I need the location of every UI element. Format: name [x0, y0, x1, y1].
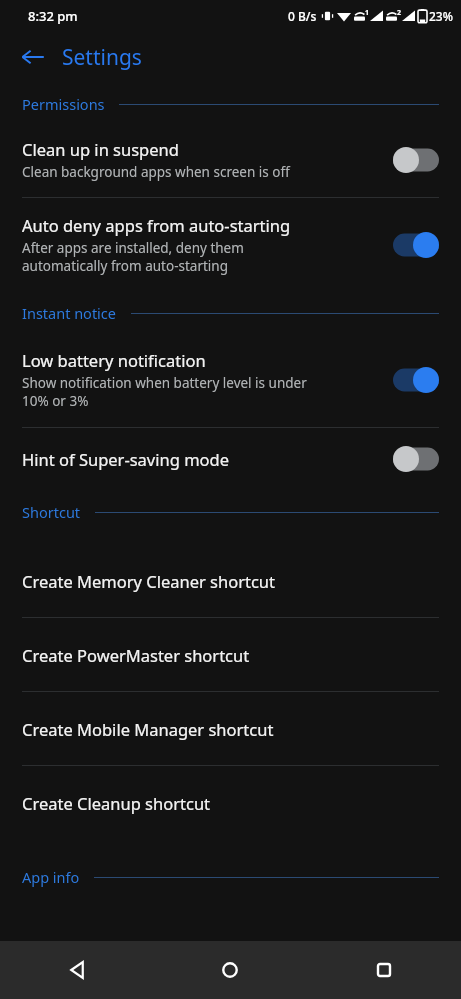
- button[interactable]: Create PowerMaster shortcut: [0, 618, 461, 691]
- staticText: Create Memory Cleaner shortcut: [22, 570, 276, 592]
- button[interactable]: Create Memory Cleaner shortcut: [0, 544, 461, 617]
- staticText: App info: [22, 867, 80, 887]
- button[interactable]: Off: [393, 446, 439, 472]
- staticText: Hint of Super-saving mode: [22, 448, 230, 470]
- button[interactable]: Back: [0, 941, 153, 999]
- staticText: 2: [397, 8, 402, 18]
- button[interactable]: Recent apps: [307, 941, 461, 999]
- staticText: Clean up in suspend: [22, 138, 179, 160]
- staticText: Auto deny apps from auto-starting: [22, 214, 291, 236]
- button[interactable]: Low battery notification: [0, 347, 461, 412]
- button[interactable]: Off: [393, 147, 439, 173]
- button[interactable]: Create Cleanup shortcut: [0, 766, 461, 839]
- staticText: Settings: [62, 43, 142, 72]
- button[interactable]: Create Mobile Manager shortcut: [0, 692, 461, 765]
- button[interactable]: Back: [10, 34, 56, 80]
- staticText: 1: [365, 8, 370, 18]
- staticText: Permissions: [22, 94, 105, 114]
- button[interactable]: Home: [153, 941, 307, 999]
- staticText: Show notification when battery level is …: [22, 374, 307, 410]
- button[interactable]: Clean up in suspend: [0, 136, 461, 183]
- staticText: Create Cleanup shortcut: [22, 792, 211, 814]
- button[interactable]: Auto deny apps from auto-starting: [0, 212, 461, 277]
- staticText: Create PowerMaster shortcut: [22, 644, 250, 666]
- staticText: Instant notice: [22, 303, 117, 323]
- staticText: After apps are installed, deny them auto…: [22, 239, 244, 275]
- staticText: Clean background apps when screen is off: [22, 163, 290, 181]
- staticText: 8:32 pm: [28, 7, 78, 25]
- staticText: 0 B/s: [288, 8, 317, 24]
- button[interactable]: On: [393, 232, 439, 258]
- staticText: Low battery notification: [22, 349, 206, 371]
- staticText: 23%: [429, 8, 453, 24]
- button[interactable]: Hint of Super-saving mode: [0, 444, 461, 474]
- button[interactable]: On: [393, 367, 439, 393]
- staticText: Create Mobile Manager shortcut: [22, 718, 274, 740]
- staticText: Shortcut: [22, 502, 81, 522]
